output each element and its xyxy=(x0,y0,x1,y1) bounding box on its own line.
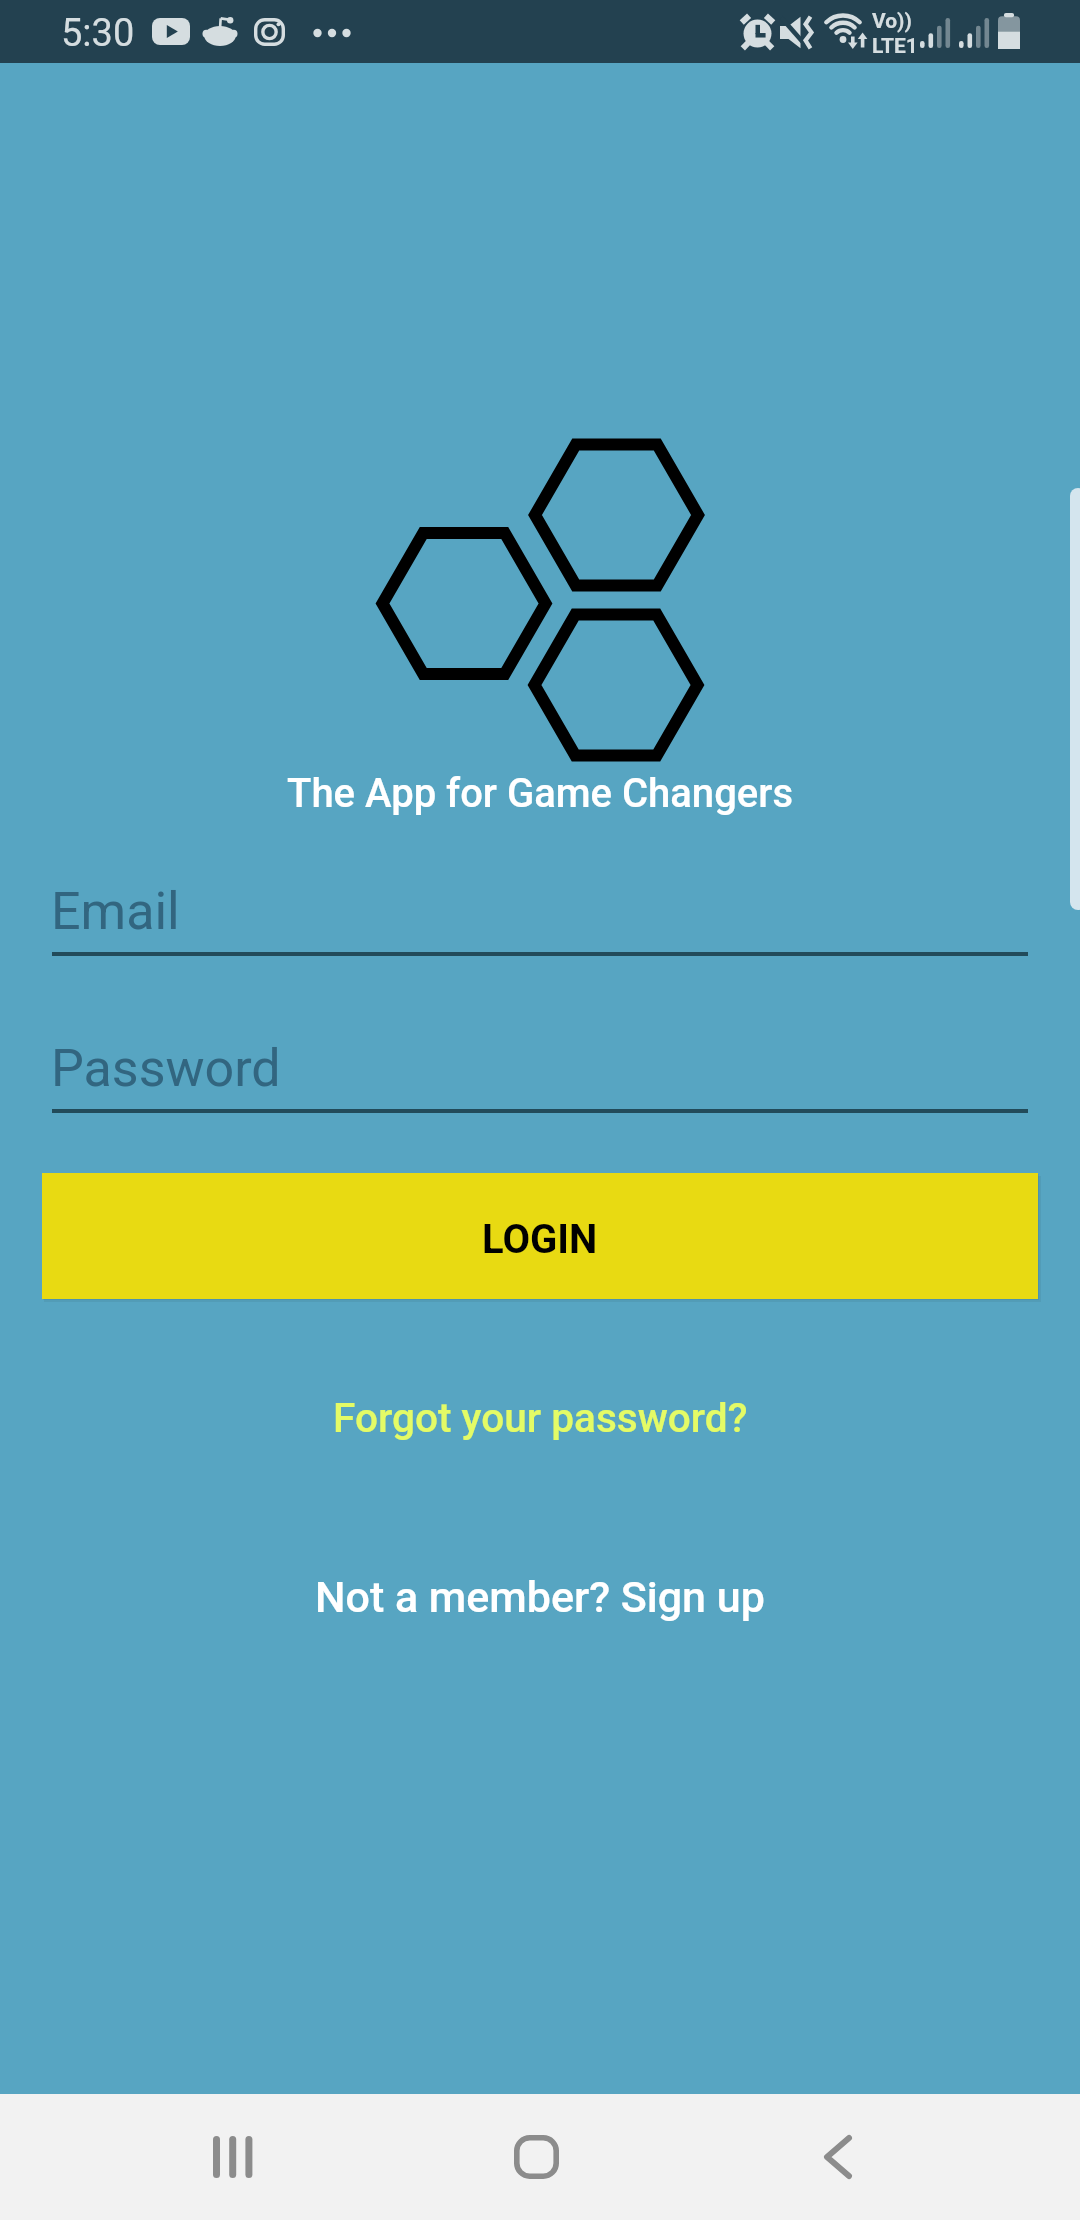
button[interactable]: Password xyxy=(52,1017,1028,1113)
button[interactable]: Home xyxy=(446,2094,626,2220)
staticText: Vo)) xyxy=(872,9,912,34)
button[interactable]: Recent apps xyxy=(143,2094,323,2220)
button[interactable]: Not a member? Sign up xyxy=(0,1553,1080,1641)
staticText: Password xyxy=(51,1038,281,1099)
button[interactable]: Email xyxy=(52,860,1028,956)
staticText: Email xyxy=(51,881,180,942)
staticText: Not a member? Sign up xyxy=(315,1572,765,1622)
staticText: LTE1 xyxy=(872,34,918,59)
button[interactable]: Back xyxy=(748,2094,928,2220)
button[interactable]: Forgot your password? xyxy=(0,1374,1080,1462)
button[interactable]: LOGIN xyxy=(42,1173,1038,1299)
staticText: 5:30 xyxy=(61,11,135,56)
staticText: Forgot your password? xyxy=(333,1394,748,1442)
staticText: LOGIN xyxy=(482,1216,598,1263)
staticText: The App for Game Changers xyxy=(287,770,793,817)
